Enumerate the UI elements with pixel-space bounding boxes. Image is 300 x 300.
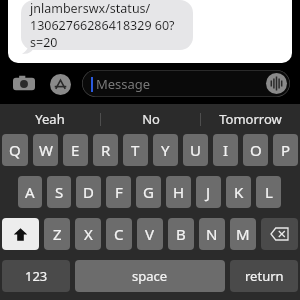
button[interactable]: Camera [10, 70, 38, 98]
staticText: B [176, 224, 186, 244]
button[interactable]: F [106, 176, 131, 208]
button[interactable]: M [230, 218, 256, 250]
staticText: Q [9, 140, 21, 160]
button[interactable]: P [273, 134, 298, 166]
button[interactable]: No [101, 104, 200, 134]
staticText: U [190, 140, 201, 160]
button[interactable]: Yeah [0, 104, 100, 134]
button[interactable]: Y [153, 134, 178, 166]
staticText: Z [53, 224, 62, 244]
button[interactable]: W [33, 134, 58, 166]
button[interactable]: B [168, 218, 194, 250]
staticText: return [245, 267, 284, 285]
staticText: V [145, 224, 155, 244]
button[interactable]: C [106, 218, 132, 250]
staticText: A [25, 182, 35, 202]
staticText: 123 [25, 267, 48, 285]
staticText: jnlamberswx/status/ [30, 0, 151, 17]
button[interactable]: Apps [46, 70, 74, 98]
staticText: Tomorrow [219, 110, 282, 128]
button[interactable]: E [63, 134, 88, 166]
staticText: E [71, 140, 80, 160]
button[interactable]: A [18, 176, 42, 208]
staticText: C [114, 224, 124, 244]
button[interactable]: space [75, 260, 225, 292]
button[interactable]: I [213, 134, 238, 166]
button[interactable]: Z [44, 218, 70, 250]
staticText: G [143, 182, 154, 202]
button[interactable]: H [166, 176, 191, 208]
staticText: Yeah [35, 110, 65, 128]
button[interactable]: X [75, 218, 101, 250]
button[interactable]: U [183, 134, 208, 166]
staticText: space [132, 267, 168, 285]
staticText: R [101, 140, 111, 160]
button[interactable]: O [243, 134, 268, 166]
staticText: N [206, 224, 218, 244]
button[interactable]: Record audio [266, 73, 287, 94]
button[interactable]: N [199, 218, 225, 250]
button[interactable]: jnlamberswx/status/ [21, 0, 193, 50]
staticText: O [250, 140, 262, 160]
button[interactable]: Tomorrow [201, 104, 300, 134]
button[interactable]: Backspace [261, 218, 298, 250]
staticText: X [84, 224, 93, 244]
button[interactable]: J [196, 176, 221, 208]
button[interactable]: return [230, 260, 298, 292]
staticText: F [115, 182, 123, 202]
staticText: T [131, 140, 140, 160]
staticText: s=20 [30, 34, 58, 50]
button[interactable]: G [136, 176, 161, 208]
staticText: No [142, 110, 160, 128]
button[interactable]: 123 [2, 260, 70, 292]
staticText: Y [161, 140, 170, 160]
button[interactable]: T [123, 134, 148, 166]
button[interactable]: R [93, 134, 118, 166]
staticText: K [234, 182, 244, 202]
staticText: L [265, 182, 273, 202]
staticText: M [236, 224, 250, 244]
staticText: S [55, 182, 64, 202]
button[interactable]: S [47, 176, 71, 208]
button[interactable]: D [76, 176, 101, 208]
staticText: J [206, 182, 211, 202]
staticText: 13062766286418329 60? [30, 17, 175, 34]
button[interactable]: V [137, 218, 163, 250]
staticText: P [281, 140, 291, 160]
button[interactable]: Q [2, 134, 28, 166]
button[interactable]: Shift [2, 218, 39, 250]
staticText: D [83, 182, 94, 202]
button[interactable]: K [226, 176, 251, 208]
button[interactable]: L [256, 176, 281, 208]
button[interactable]: Message [82, 70, 290, 97]
staticText: I [223, 140, 229, 160]
staticText: Message [96, 75, 151, 93]
staticText: W [39, 140, 53, 160]
staticText: H [173, 182, 185, 202]
